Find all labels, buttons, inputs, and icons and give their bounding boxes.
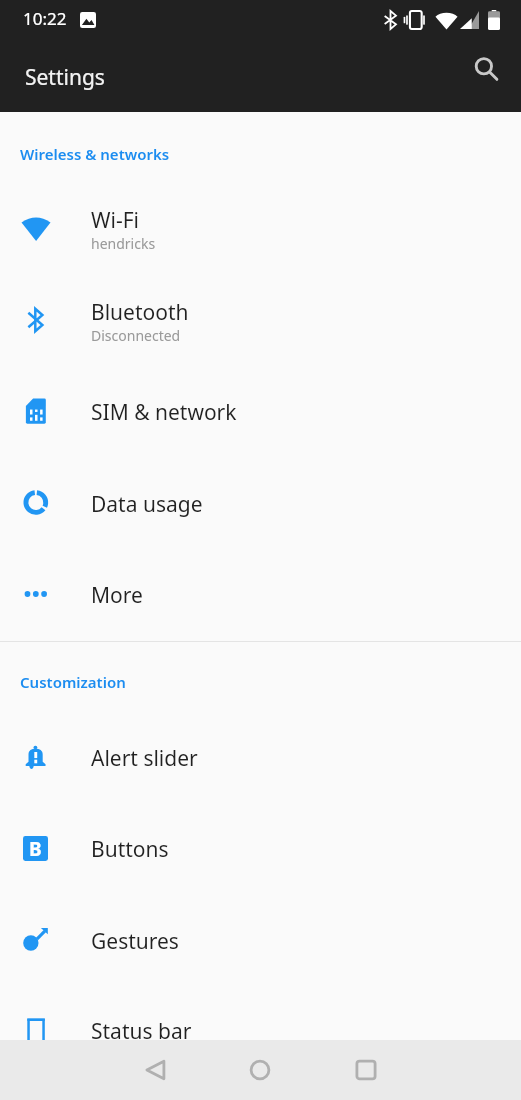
- staticText: Customization: [20, 672, 126, 692]
- staticText: 10:22: [23, 7, 67, 30]
- staticText: More: [91, 581, 143, 610]
- staticText: Wi-Fi: [91, 206, 140, 235]
- staticText: B: [29, 836, 42, 861]
- staticText: Settings: [25, 63, 105, 92]
- staticText: Status bar: [91, 1017, 192, 1046]
- staticText: Bluetooth: [91, 298, 189, 327]
- button[interactable]: Data usage: [0, 455, 521, 546]
- button[interactable]: More: [0, 546, 521, 637]
- staticText: hendricks: [91, 234, 156, 253]
- button[interactable]: Gestures: [0, 892, 521, 983]
- button[interactable]: Wi-Fi: [0, 182, 521, 273]
- button[interactable]: Home: [230, 1040, 290, 1100]
- staticText: Alert slider: [91, 744, 198, 773]
- staticText: SIM & network: [91, 398, 237, 427]
- staticText: Buttons: [91, 835, 169, 864]
- button[interactable]: Status bar: [0, 983, 521, 1074]
- button[interactable]: SIM & network: [0, 364, 521, 455]
- staticText: Gestures: [91, 927, 179, 956]
- button[interactable]: Recents: [336, 1040, 396, 1100]
- staticText: Disconnected: [91, 326, 181, 345]
- button[interactable]: B: [0, 801, 521, 892]
- button[interactable]: Back: [126, 1040, 186, 1100]
- button[interactable]: Bluetooth: [0, 273, 521, 364]
- staticText: Data usage: [91, 490, 203, 519]
- button[interactable]: Search: [463, 46, 511, 94]
- staticText: Wireless & networks: [20, 144, 170, 164]
- button[interactable]: Alert slider: [0, 710, 521, 801]
